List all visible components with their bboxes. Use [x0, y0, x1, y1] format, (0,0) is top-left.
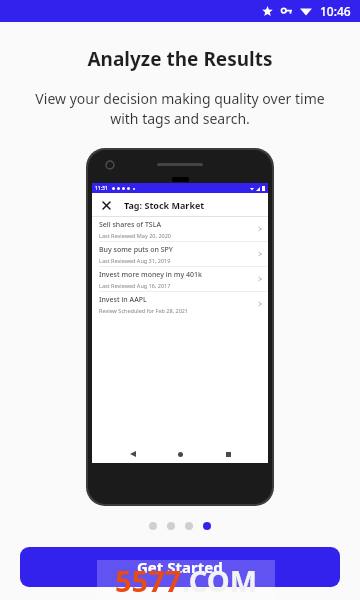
staticText: Invest more money in my 401k [99, 270, 202, 280]
staticText: Analyze the Results [0, 46, 360, 72]
staticText: Review Scheduled for Feb 28, 2021 [99, 307, 189, 314]
staticText: 10:46 [320, 3, 351, 19]
button[interactable]: Invest in AAPL [92, 292, 268, 316]
staticText: Last Reviewed Aug 16, 2017 [99, 282, 171, 289]
button[interactable]: Buy some puts on SPY [92, 242, 268, 266]
button[interactable]: Home [173, 447, 187, 461]
staticText: Get Started [137, 557, 223, 577]
staticText: View your decision making quality over t… [14, 89, 346, 128]
button[interactable]: Close [99, 198, 113, 212]
staticText: Sell shares of TSLA [99, 220, 162, 230]
staticText: Last Reviewed May 20, 2020 [99, 232, 171, 239]
button[interactable]: Back [126, 447, 140, 461]
staticText: 5577 [115, 561, 182, 600]
staticText: Tag: Stock Market [124, 199, 205, 211]
staticText: 11:31 [95, 185, 108, 192]
staticText: Buy some puts on SPY [99, 245, 173, 255]
staticText: .COM [182, 561, 258, 600]
button[interactable]: Recents [221, 447, 235, 461]
button[interactable]: Sell shares of TSLA [92, 217, 268, 241]
staticText: Last Reviewed Aug 31, 2019 [99, 257, 171, 264]
button[interactable]: Get Started [20, 547, 340, 587]
staticText: Invest in AAPL [99, 295, 147, 305]
button[interactable]: Invest more money in my 401k [92, 267, 268, 291]
